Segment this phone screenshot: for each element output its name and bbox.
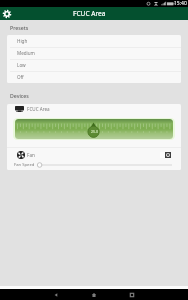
staticText: 25.0 [91, 129, 98, 134]
staticText: 15:40 [174, 0, 187, 7]
staticText: FCUC Area [27, 106, 50, 112]
staticText: Fan Speed [14, 162, 35, 168]
staticText: Medium [17, 50, 35, 56]
staticText: Off [17, 74, 24, 80]
button[interactable]: Low [7, 59, 181, 71]
button[interactable]: Back [37, 289, 75, 300]
button[interactable]: Off [7, 71, 181, 83]
button[interactable]: Home [75, 289, 113, 300]
staticText: FCUC Area [73, 9, 106, 18]
staticText: Low [17, 62, 26, 68]
staticText: Fan [27, 152, 35, 158]
staticText: Presets [10, 24, 29, 31]
button[interactable]: Recents [113, 289, 151, 300]
button[interactable]: Medium [7, 47, 181, 59]
button[interactable]: High [7, 35, 181, 47]
staticText: Devices [10, 92, 29, 99]
button[interactable]: Settings [2, 9, 12, 19]
button[interactable]: Temperature slider [15, 119, 173, 139]
button[interactable]: Fan on off toggle [160, 152, 171, 158]
staticText: High [17, 38, 28, 44]
